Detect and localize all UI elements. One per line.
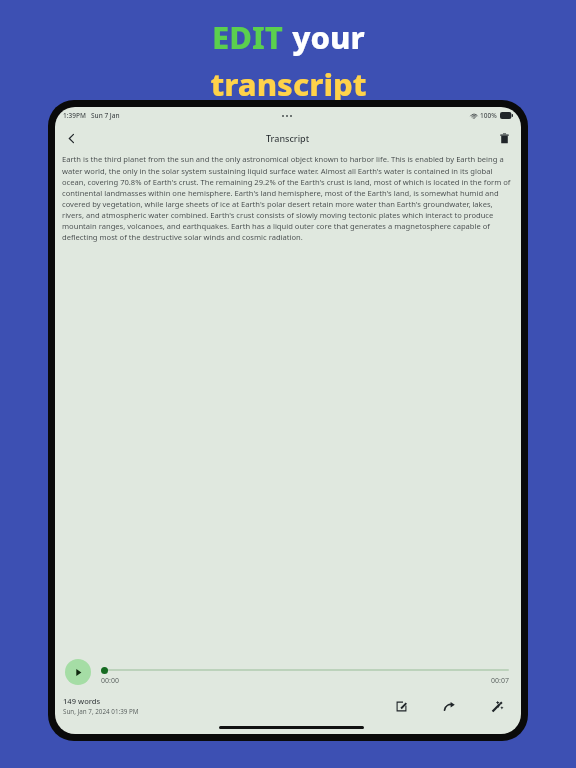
- staticText: Sun 7 Jan: [91, 111, 120, 120]
- button[interactable]: Seek: [101, 667, 108, 674]
- staticText: Earth is the third planet from the sun a…: [62, 154, 514, 242]
- staticText: 1:39PM: [63, 111, 86, 120]
- button[interactable]: Delete: [493, 127, 515, 149]
- button[interactable]: Share: [439, 696, 459, 716]
- button[interactable]: Edit: [391, 696, 411, 716]
- staticText: 00:07: [491, 676, 509, 686]
- staticText: 00:00: [101, 676, 119, 686]
- button[interactable]: Play: [65, 659, 91, 685]
- staticText: your: [292, 16, 365, 58]
- staticText: 149 words: [63, 696, 101, 706]
- staticText: 100%: [480, 111, 497, 120]
- staticText: EDIT: [212, 16, 283, 58]
- staticText: transcript: [210, 63, 367, 105]
- button[interactable]: Enhance: [487, 696, 507, 716]
- button[interactable]: Back: [60, 127, 82, 149]
- staticText: Sun, Jan 7, 2024 01:39 PM: [63, 707, 139, 716]
- staticText: Transcript: [266, 132, 310, 144]
